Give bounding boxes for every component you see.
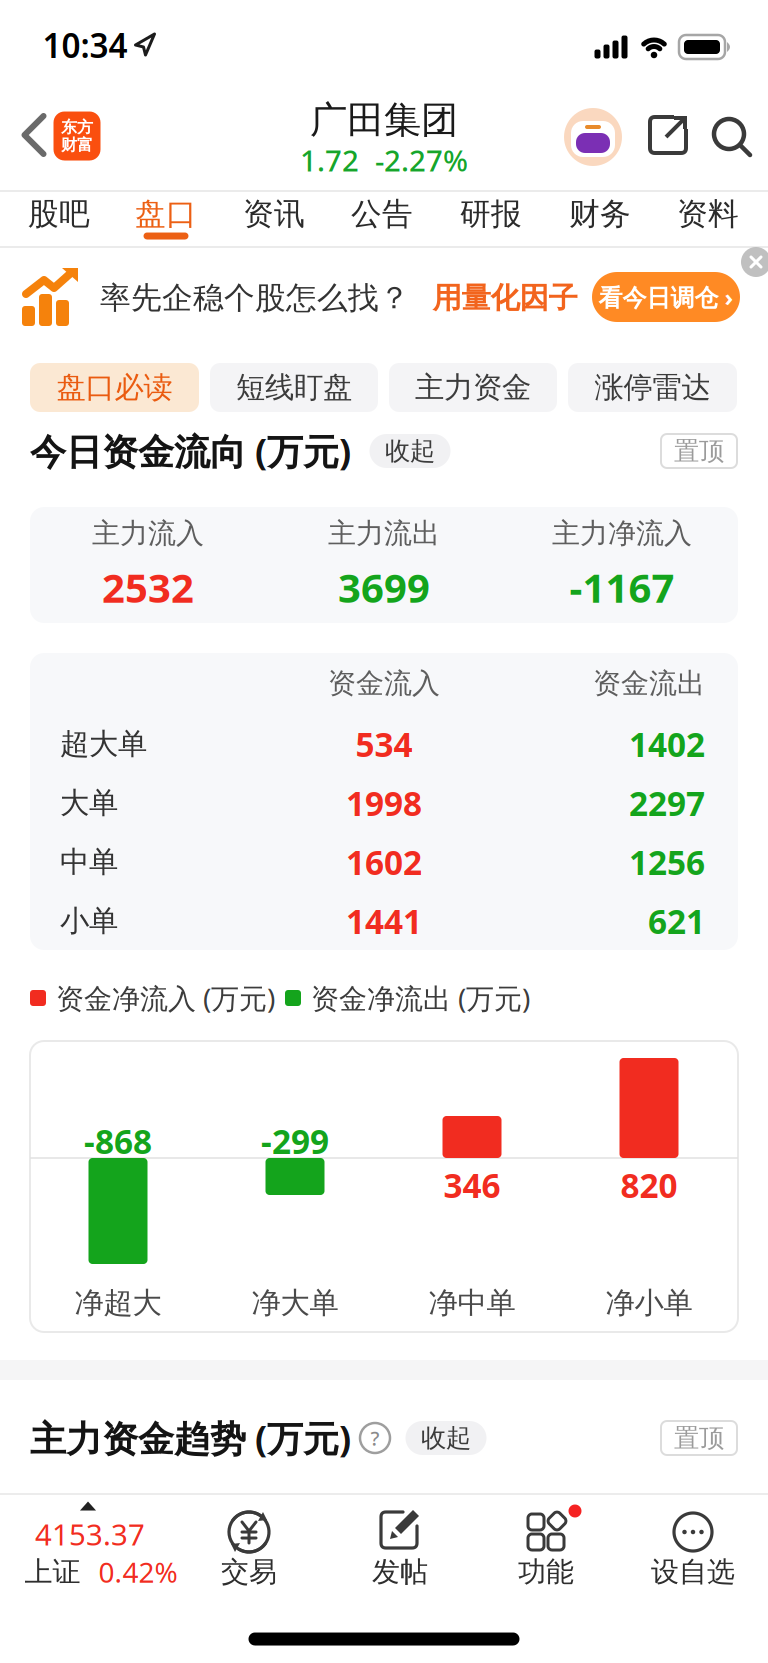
staticText: 10:34: [42, 23, 127, 67]
staticText: 财富: [61, 135, 93, 155]
staticText: 资金流出: [593, 666, 705, 701]
staticText: 4153.37: [35, 1514, 145, 1553]
button[interactable]: 收起: [369, 434, 450, 468]
staticText: 1256: [629, 840, 705, 884]
staticText: 功能: [518, 1555, 574, 1589]
button[interactable]: 资料: [677, 195, 739, 233]
staticText: 1.72 -2.27%: [300, 140, 468, 179]
button[interactable]: 设自选: [623, 1493, 763, 1593]
staticText: 超大单: [60, 726, 147, 762]
staticText: 净超大: [74, 1285, 161, 1321]
staticText: 净大单: [251, 1285, 338, 1321]
staticText: -868: [84, 1119, 152, 1163]
staticText: 主力流出: [328, 516, 440, 551]
staticText: 资金流入: [328, 666, 440, 701]
button[interactable]: 4153.37: [28, 1493, 173, 1593]
button[interactable]: 财务: [569, 195, 631, 233]
staticText: 上证: [24, 1555, 80, 1589]
button[interactable]: 盘口必读: [30, 363, 199, 412]
staticText: 主力资金: [415, 369, 531, 405]
staticText: 收起: [421, 1422, 471, 1453]
button[interactable]: 发帖: [330, 1493, 470, 1593]
staticText: 广田集团: [310, 97, 458, 143]
staticText: 用量化因子: [432, 280, 577, 316]
staticText: -299: [261, 1119, 329, 1163]
staticText: 净小单: [605, 1285, 692, 1321]
button[interactable]: 智能助手: [564, 108, 622, 166]
staticText: ?: [370, 1425, 379, 1451]
staticText: 资金净流入 (万元): [56, 979, 275, 1017]
staticText: 534: [355, 722, 412, 766]
staticText: 2297: [629, 781, 705, 825]
staticText: 交易: [221, 1555, 277, 1589]
button[interactable]: 盘口: [135, 195, 197, 233]
staticText: 看今日调仓 ›: [598, 281, 733, 313]
staticText: 东方: [61, 117, 93, 137]
button[interactable]: 资讯: [243, 195, 305, 233]
staticText: 3699: [338, 561, 430, 614]
staticText: 盘口必读: [56, 369, 172, 405]
staticText: 置顶: [674, 435, 724, 466]
staticText: -1167: [569, 561, 674, 614]
staticText: 置顶: [674, 1422, 724, 1453]
staticText: 资料: [677, 195, 739, 233]
staticText: 发帖: [372, 1555, 428, 1589]
staticText: 财务: [569, 195, 631, 233]
staticText: 收起: [385, 435, 435, 466]
staticText: 股吧: [28, 195, 90, 233]
staticText: 率先企稳个股怎么找？: [100, 279, 410, 317]
staticText: 1441: [346, 899, 422, 943]
staticText: 主力资金趋势 (万元): [30, 1414, 351, 1462]
button[interactable]: 主力资金: [389, 363, 557, 412]
staticText: 1602: [346, 840, 422, 884]
staticText: 今日资金流向 (万元): [30, 427, 351, 475]
staticText: 小单: [60, 903, 118, 939]
staticText: 820: [620, 1163, 677, 1207]
button[interactable]: 短线盯盘: [210, 363, 378, 412]
staticText: 公告: [351, 195, 413, 233]
button[interactable]: 看今日调仓 ›: [592, 272, 740, 322]
staticText: 资讯: [243, 195, 305, 233]
staticText: 346: [443, 1163, 500, 1207]
button[interactable]: 股吧: [28, 195, 90, 233]
button[interactable]: 交易: [179, 1493, 319, 1593]
staticText: 主力流入: [92, 516, 204, 551]
staticText: 1998: [346, 781, 422, 825]
button[interactable]: 东方财富: [53, 111, 100, 160]
staticText: 盘口: [135, 195, 197, 233]
staticText: 1402: [629, 722, 705, 766]
staticText: 中单: [60, 844, 118, 880]
button[interactable]: Close: [741, 247, 768, 277]
button[interactable]: 置顶: [661, 1421, 737, 1455]
button[interactable]: 涨停雷达: [568, 363, 737, 412]
button[interactable]: Back: [21, 114, 46, 156]
button[interactable]: 功能: [476, 1493, 616, 1593]
staticText: 0.42%: [98, 1553, 177, 1591]
staticText: 2532: [102, 561, 194, 614]
button[interactable]: Search: [712, 117, 752, 157]
button[interactable]: 说明: [360, 1423, 390, 1453]
staticText: 设自选: [651, 1555, 735, 1589]
button[interactable]: 收起: [405, 1421, 486, 1455]
staticText: 主力净流入: [552, 516, 692, 551]
staticText: 涨停雷达: [594, 369, 710, 405]
staticText: 净中单: [428, 1285, 515, 1321]
staticText: 研报: [460, 195, 522, 233]
button[interactable]: 研报: [460, 195, 522, 233]
staticText: 资金净流出 (万元): [311, 979, 530, 1017]
staticText: 短线盯盘: [236, 369, 352, 405]
staticText: 大单: [60, 785, 118, 821]
staticText: 621: [648, 899, 705, 943]
button[interactable]: 置顶: [661, 434, 737, 468]
button[interactable]: 公告: [351, 195, 413, 233]
button[interactable]: Share: [648, 115, 688, 155]
